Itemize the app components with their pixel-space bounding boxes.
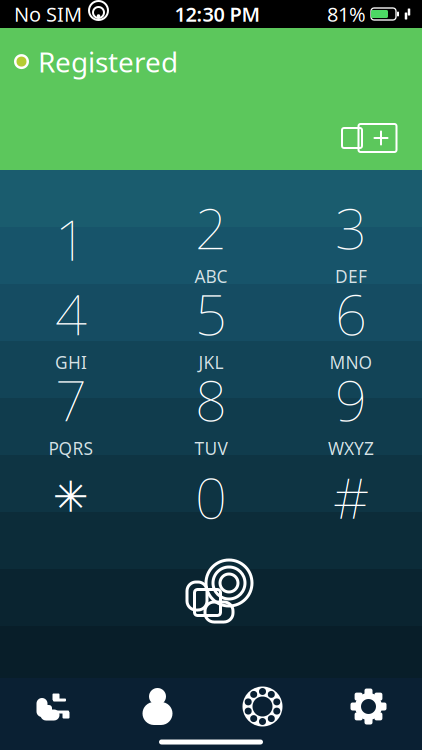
staticText: 5 (195, 276, 227, 351)
staticText: 81% (327, 1, 366, 27)
staticText: PQRS (48, 437, 93, 460)
button[interactable]: 4 (1, 282, 141, 368)
button[interactable]: Keypad (210, 681, 315, 731)
staticText: 9 (335, 362, 367, 437)
staticText: 4 (55, 276, 87, 351)
button[interactable]: Delete (336, 116, 406, 160)
button[interactable]: # (281, 454, 421, 540)
staticText: 8 (195, 362, 227, 437)
staticText: 12:30 PM (174, 1, 260, 27)
staticText: TUV (194, 437, 227, 460)
button[interactable]: 1 (1, 196, 141, 282)
staticText: # (333, 460, 369, 534)
button[interactable]: 8 (141, 368, 281, 454)
staticText: MNO (329, 351, 372, 374)
staticText: ✳ (53, 473, 89, 521)
button[interactable]: Contacts (105, 681, 210, 731)
staticText: 6 (335, 276, 367, 351)
button[interactable]: 6 (281, 282, 421, 368)
button[interactable]: 7 (1, 368, 141, 454)
staticText: 7 (55, 362, 87, 437)
staticText: GHI (55, 351, 87, 374)
button[interactable]: 9 (281, 368, 421, 454)
staticText: No SIM (14, 1, 82, 27)
button[interactable]: ✳ (1, 454, 141, 540)
button[interactable]: Settings (315, 681, 422, 731)
staticText: 2 (195, 190, 227, 265)
staticText: Registered (38, 43, 178, 80)
button[interactable]: 3 (281, 196, 421, 282)
staticText: 0 (195, 460, 227, 534)
staticText: WXYZ (328, 437, 374, 460)
staticText: 3 (335, 190, 367, 265)
button[interactable]: Call (161, 556, 261, 640)
button[interactable]: 2 (141, 196, 281, 282)
staticText: DEF (335, 265, 367, 288)
staticText: 1 (55, 202, 87, 276)
button[interactable]: 0 (141, 454, 281, 540)
button[interactable]: Recents (0, 681, 105, 731)
staticText: ABC (194, 265, 227, 288)
staticText: JKL (198, 351, 223, 374)
button[interactable]: 5 (141, 282, 281, 368)
